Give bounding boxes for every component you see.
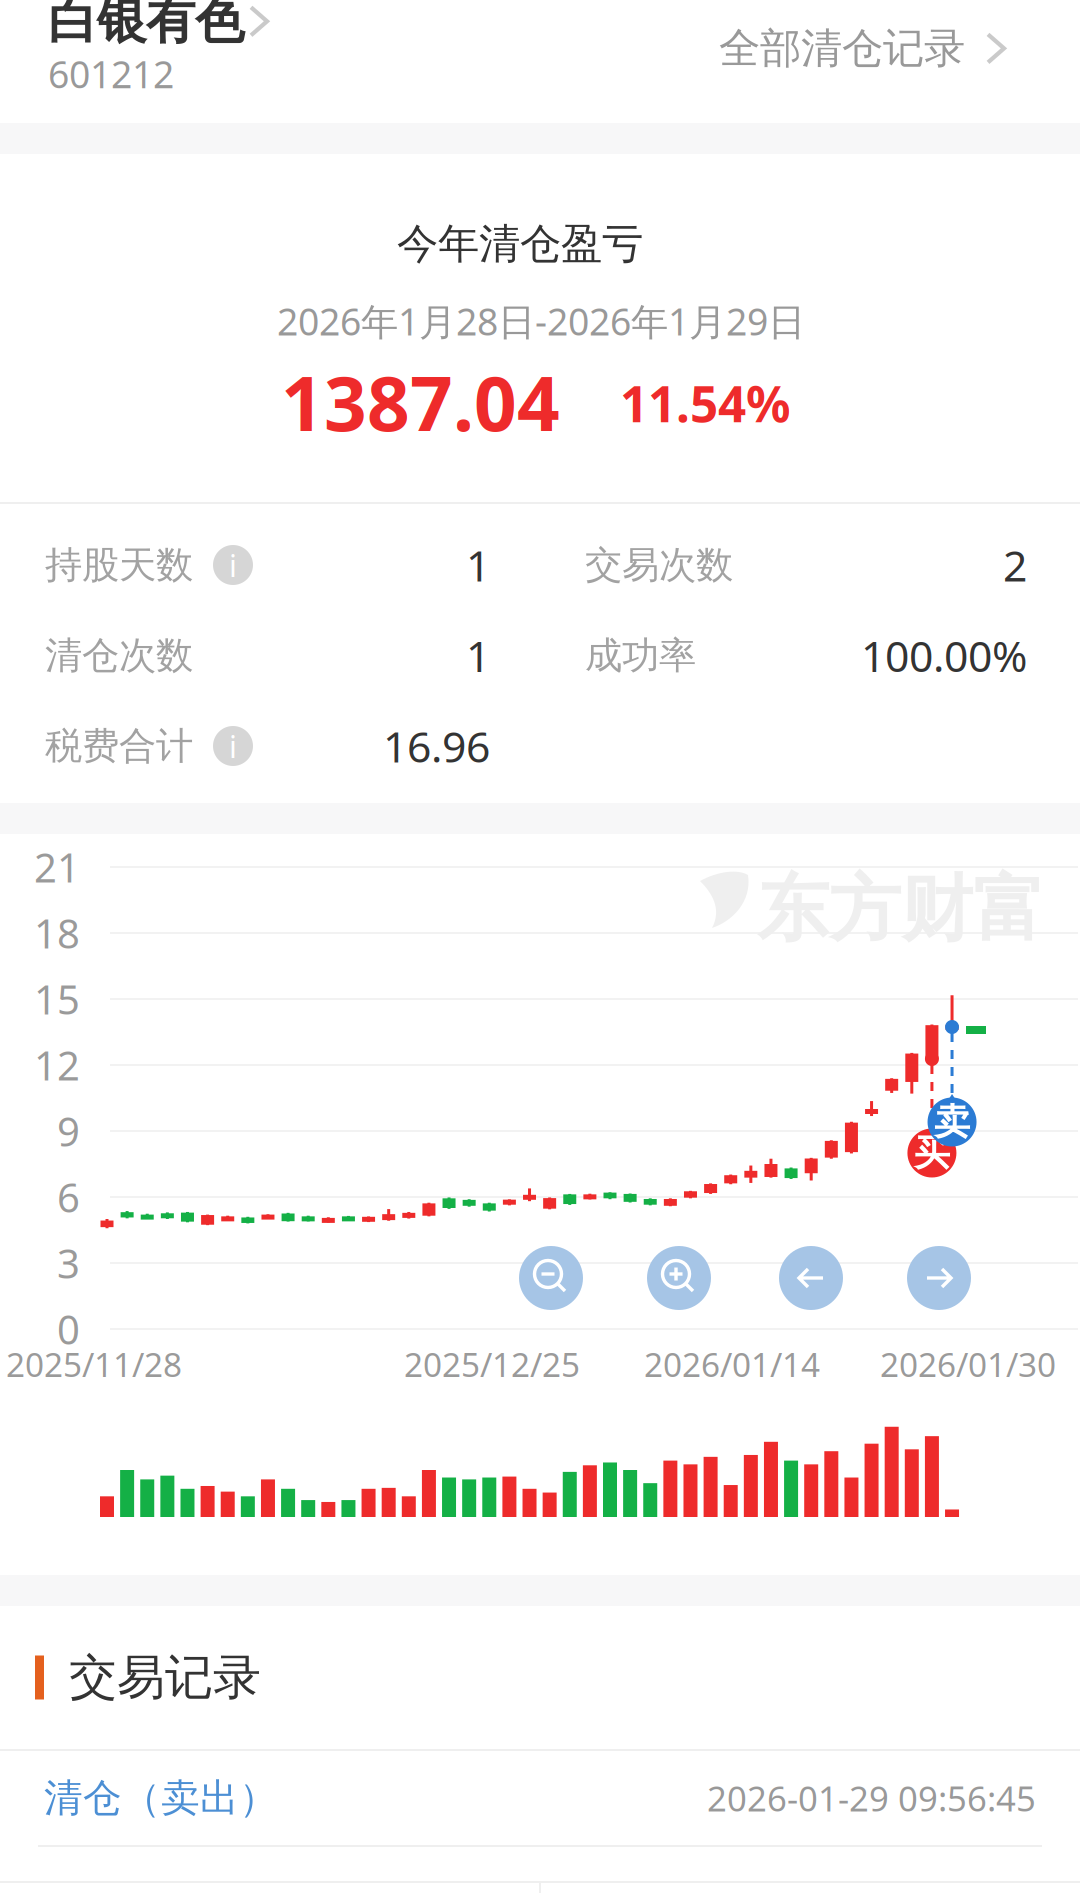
staticText: 买 [914,1131,950,1175]
staticText: 2026/01/14 [644,1342,820,1386]
staticText: 16.96 [383,718,490,774]
staticText: 11.54% [620,370,790,436]
staticText: 卖 [934,1100,970,1144]
staticText: 9 [57,1104,80,1157]
staticText: 税费合计 [45,723,193,769]
staticText: 白银有色 [48,0,244,52]
button[interactable]: 白银有色 [48,0,268,83]
staticText: 成功率 [585,633,696,678]
button[interactable]: 全部清仓记录 [719,23,1005,74]
button[interactable]: Zoom in [647,1246,711,1310]
staticText: 交易次数 [585,542,733,588]
staticText: i [229,726,237,766]
staticText: i [229,545,237,585]
staticText: 东方财富 [757,865,1045,953]
staticText: 2025/12/25 [404,1342,580,1386]
staticText: 1387.04 [281,352,560,452]
staticText: 21 [34,840,80,893]
staticText: 2 [1003,537,1027,593]
staticText: 清仓（卖出） [44,1774,278,1822]
staticText: 12 [34,1038,80,1091]
button[interactable]: 清仓（卖出） [0,1751,1080,1845]
staticText: 15 [34,972,80,1025]
staticText: 持股天数 [45,542,193,588]
staticText: 交易记录 [69,1648,261,1707]
staticText: 6 [57,1170,80,1223]
button[interactable]: Zoom out [519,1246,583,1310]
staticText: 全部清仓记录 [719,23,965,74]
staticText: 今年清仓盈亏 [397,219,643,269]
staticText: 0 [57,1302,80,1355]
staticText: 2026-01-29 09:56:45 [707,1775,1036,1821]
staticText: 2026年1月28日-2026年1月29日 [277,296,805,346]
staticText: 100.00% [861,627,1027,684]
staticText: 18 [34,906,80,959]
staticText: 1 [466,537,490,593]
staticText: 2025/11/28 [6,1342,182,1386]
staticText: 2026/01/30 [880,1342,1056,1386]
staticText: 3 [57,1236,80,1289]
button[interactable]: Scroll right [907,1246,971,1310]
button[interactable]: Scroll left [779,1246,843,1310]
staticText: 1 [466,627,490,684]
staticText: 601212 [48,49,174,99]
staticText: 清仓次数 [45,633,193,678]
